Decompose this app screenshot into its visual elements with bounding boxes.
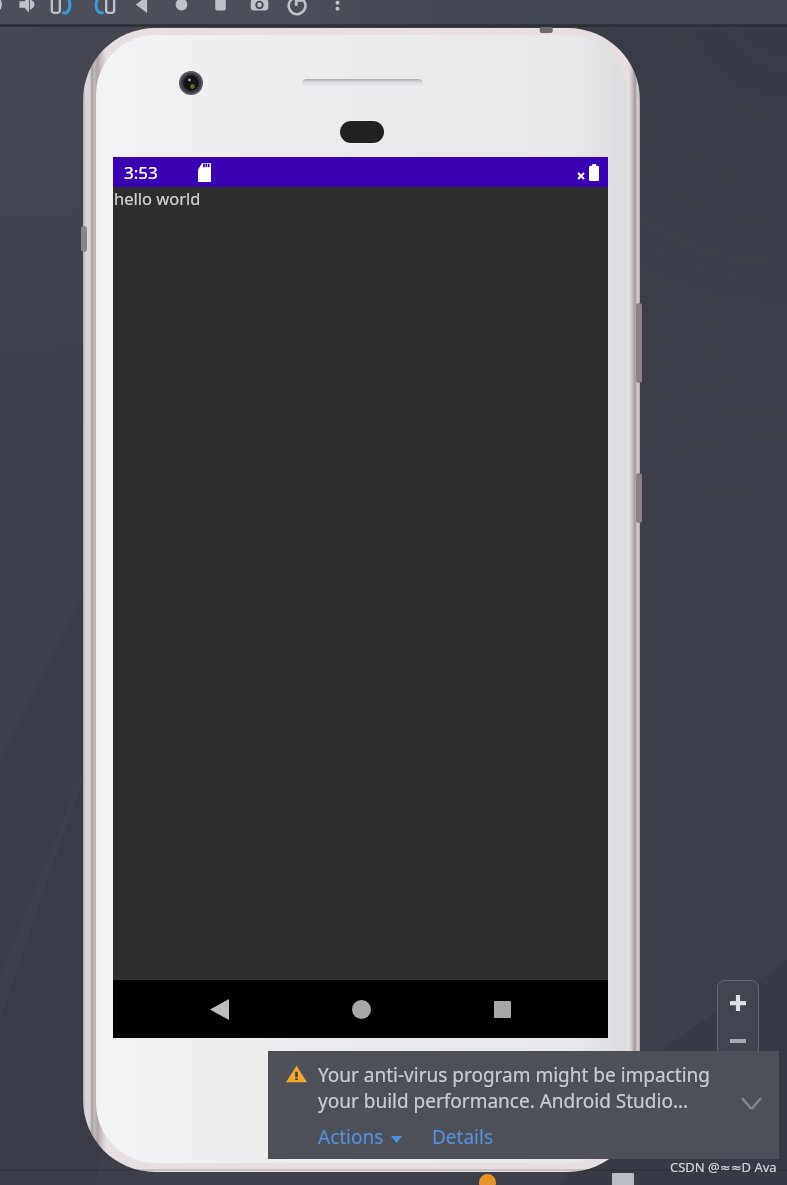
button[interactable]: Back: [184, 980, 254, 1038]
staticText: CSDN @≈≈D Ava: [670, 1158, 777, 1176]
button[interactable]: Actions: [318, 1124, 402, 1150]
button[interactable]: Rotate screen: [279, 0, 315, 25]
staticText: Your anti-virus program might be impacti…: [318, 1062, 711, 1088]
button[interactable]: Overview: [202, 0, 238, 25]
button[interactable]: Collapse notification: [735, 1087, 767, 1119]
button[interactable]: Zoom out: [717, 1026, 759, 1062]
button[interactable]: Home: [163, 0, 199, 25]
staticText: your build performance. Android Studio..…: [318, 1088, 689, 1114]
button[interactable]: More options: [319, 0, 355, 25]
staticText: Actions: [318, 1124, 384, 1150]
button[interactable]: Details: [432, 1124, 494, 1150]
button[interactable]: Power: [0, 0, 10, 25]
button[interactable]: Back: [124, 0, 160, 25]
button[interactable]: Rotate right: [86, 0, 122, 25]
button[interactable]: Recent apps: [467, 980, 537, 1038]
button[interactable]: Rotate left: [43, 0, 79, 25]
button[interactable]: Zoom in: [717, 980, 759, 1026]
staticText: 3:53: [124, 161, 158, 184]
button[interactable]: Home: [326, 980, 396, 1038]
staticText: hello world: [114, 187, 201, 209]
button[interactable]: Screenshot: [241, 0, 277, 25]
button[interactable]: Volume: [8, 0, 44, 25]
